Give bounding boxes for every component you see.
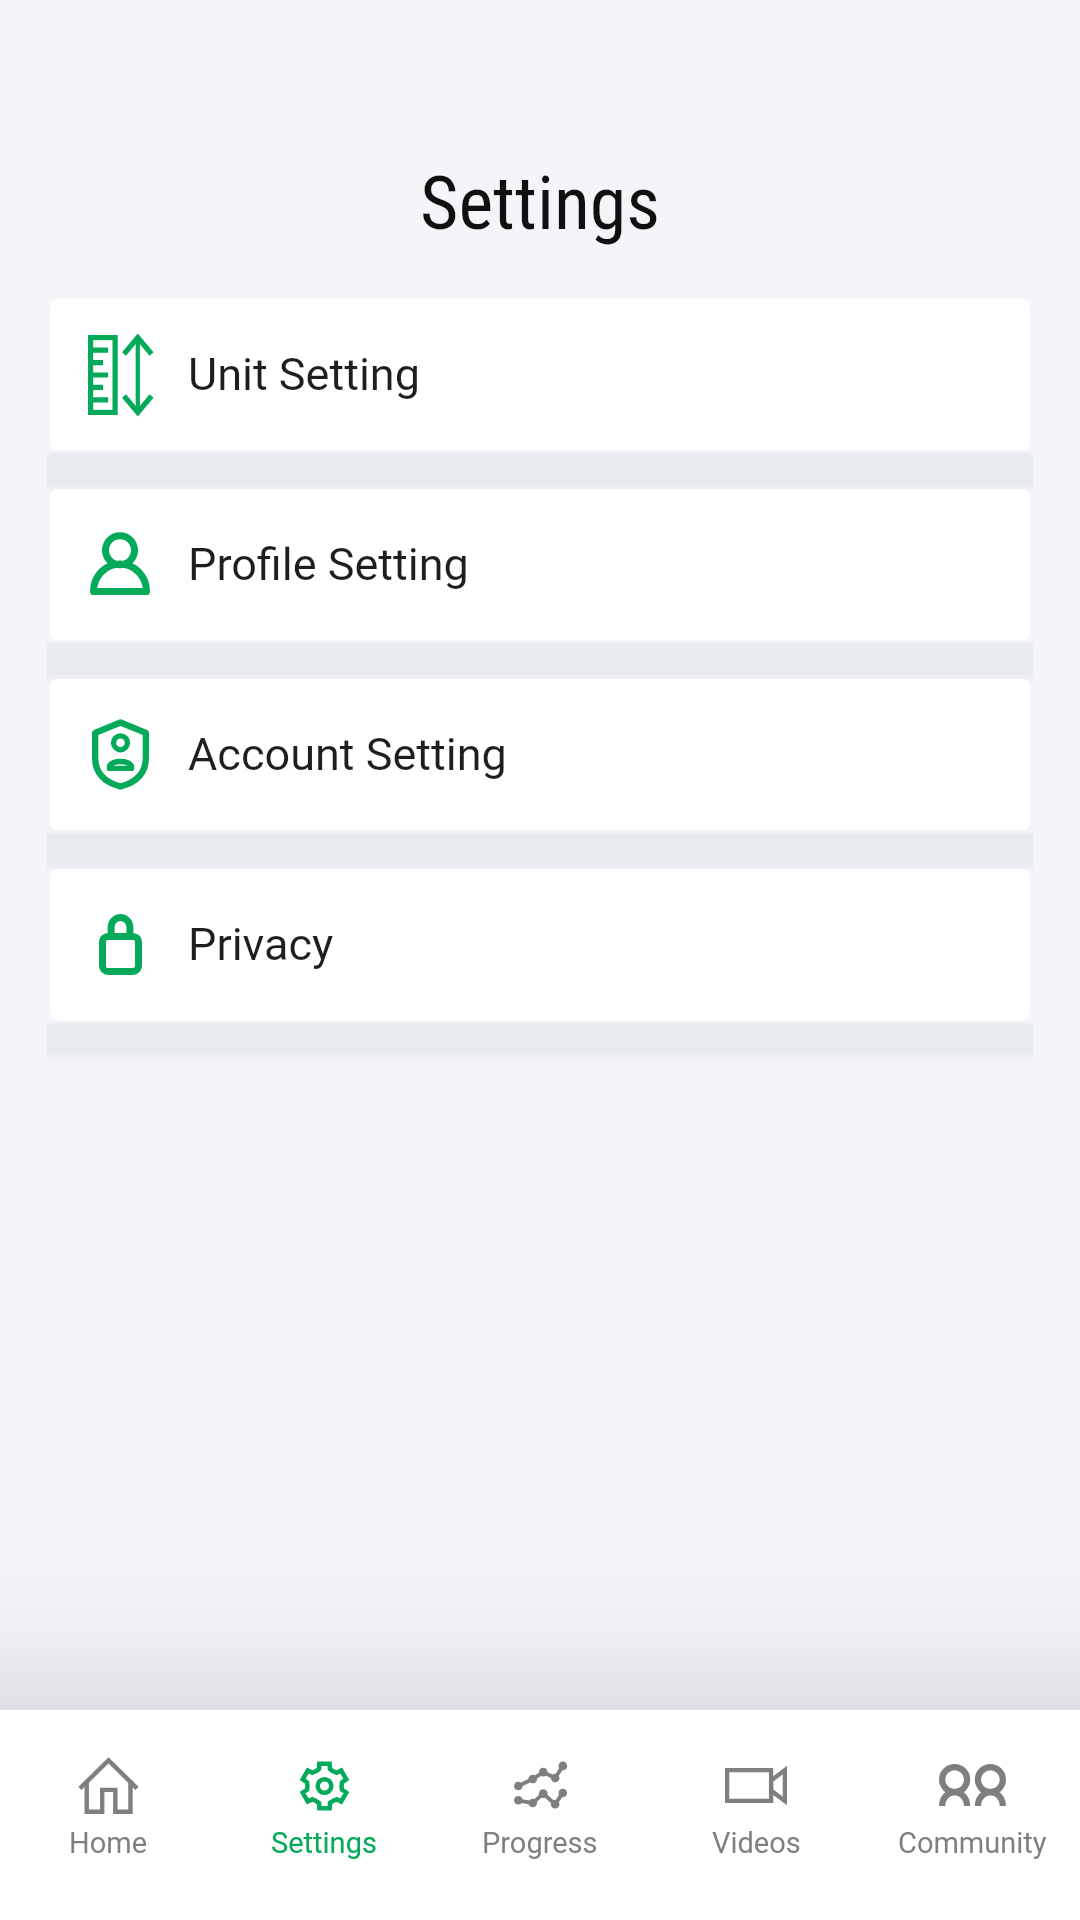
staticText: Community — [898, 1826, 1047, 1860]
staticText: Settings — [271, 1826, 377, 1860]
button[interactable]: Privacy — [50, 869, 1030, 1020]
button[interactable]: Account Setting — [50, 679, 1030, 830]
staticText: Account Setting — [188, 728, 507, 781]
button[interactable]: Profile Setting — [50, 489, 1030, 640]
staticText: Unit Setting — [188, 348, 420, 401]
staticText: Videos — [712, 1826, 801, 1860]
button[interactable]: Videos — [648, 1710, 864, 1920]
button[interactable]: Settings — [216, 1710, 432, 1920]
staticText: Home — [69, 1826, 148, 1860]
staticText: Profile Setting — [188, 538, 469, 591]
button[interactable]: Unit Setting — [50, 299, 1030, 450]
button[interactable]: Community — [864, 1710, 1080, 1920]
button[interactable]: Home — [0, 1710, 216, 1920]
button[interactable]: Progress — [432, 1710, 648, 1920]
staticText: Privacy — [188, 918, 334, 971]
staticText: Settings — [0, 160, 1080, 247]
staticText: Progress — [482, 1826, 598, 1860]
